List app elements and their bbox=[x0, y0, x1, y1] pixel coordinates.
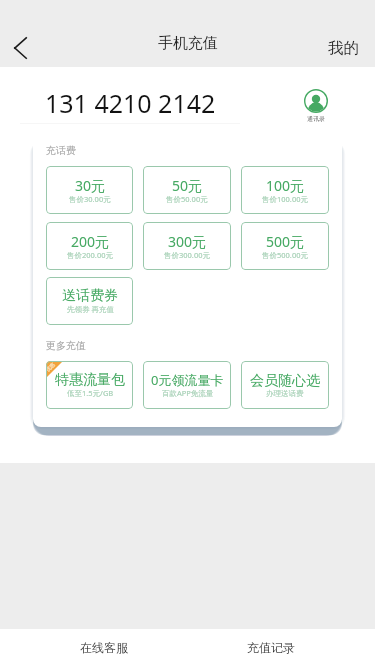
button[interactable]: 500元 bbox=[241, 222, 329, 270]
staticText: 低至1.5元/GB bbox=[67, 388, 114, 398]
staticText: 0元领流量卡 bbox=[151, 371, 224, 389]
staticText: 30元 bbox=[75, 176, 106, 195]
staticText: 充值记录 bbox=[247, 640, 295, 655]
staticText: 通讯录 bbox=[307, 115, 325, 123]
staticText: 先领券 再充值 bbox=[67, 304, 114, 314]
staticText: 百款APP免流量 bbox=[162, 388, 214, 398]
staticText: 特惠流量包 bbox=[55, 371, 125, 389]
button[interactable]: 30元 bbox=[46, 166, 133, 214]
staticText: 售价500.00元 bbox=[262, 250, 308, 260]
button[interactable]: 100元 bbox=[241, 166, 329, 214]
button[interactable]: 我的 bbox=[312, 30, 375, 66]
staticText: 售价30.00元 bbox=[69, 194, 111, 204]
staticText: 131 4210 2142 bbox=[45, 86, 216, 120]
button[interactable]: 在线客服 bbox=[20, 629, 187, 667]
button[interactable]: 特惠流量包 bbox=[46, 361, 133, 409]
staticText: 200元 bbox=[71, 232, 110, 251]
staticText: 送话费券 bbox=[62, 287, 118, 305]
staticText: 100元 bbox=[266, 176, 305, 195]
staticText: 售价300.00元 bbox=[164, 250, 210, 260]
staticText: 售价200.00元 bbox=[67, 250, 113, 260]
staticText: 500元 bbox=[266, 232, 305, 251]
staticText: 售价100.00元 bbox=[262, 194, 308, 204]
staticText: 50元 bbox=[172, 176, 203, 195]
staticText: 优惠 bbox=[46, 361, 56, 373]
staticText: 在线客服 bbox=[80, 640, 128, 655]
button[interactable]: 送话费券 bbox=[46, 277, 133, 325]
button[interactable]: 充值记录 bbox=[187, 629, 355, 667]
staticText: 我的 bbox=[328, 38, 359, 58]
button[interactable]: 200元 bbox=[46, 222, 133, 270]
button[interactable]: 50元 bbox=[143, 166, 231, 214]
button[interactable]: 0元领流量卡 bbox=[143, 361, 231, 409]
button[interactable]: 会员随心选 bbox=[241, 361, 329, 409]
staticText: 更多充值 bbox=[46, 339, 86, 352]
staticText: 会员随心选 bbox=[250, 372, 320, 390]
button[interactable]: 通讯录 bbox=[298, 89, 334, 123]
staticText: 充话费 bbox=[46, 144, 76, 157]
button[interactable]: Back bbox=[0, 28, 40, 68]
staticText: 手机充值 bbox=[158, 34, 218, 53]
staticText: 300元 bbox=[168, 232, 207, 251]
staticText: 售价50.00元 bbox=[166, 194, 208, 204]
staticText: 办理送话费 bbox=[266, 389, 304, 398]
button[interactable]: 300元 bbox=[143, 222, 231, 270]
